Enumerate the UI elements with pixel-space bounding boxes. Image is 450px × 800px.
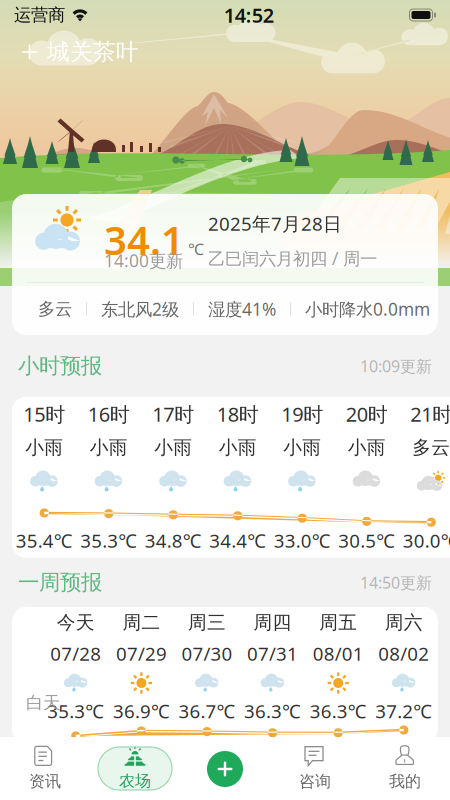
staticText: 小雨: [25, 436, 63, 459]
staticText: 30.5℃: [338, 528, 395, 553]
staticText: 35.4℃: [16, 528, 73, 553]
button[interactable]: Add: [202, 746, 248, 792]
staticText: 07/30: [181, 641, 232, 666]
staticText: 15时: [23, 401, 65, 427]
staticText: 08/01: [313, 641, 364, 666]
staticText: 周六: [385, 611, 423, 634]
staticText: 35.3℃: [80, 528, 137, 553]
staticText: 周三: [188, 611, 226, 634]
button[interactable]: 资讯: [0, 739, 90, 797]
staticText: 21时: [410, 401, 450, 427]
staticText: 30.0℃: [403, 528, 450, 553]
staticText: 07/31: [247, 641, 298, 666]
staticText: 小雨: [219, 436, 257, 459]
staticText: 10:09更新: [360, 355, 432, 377]
button[interactable]: 农场: [90, 739, 180, 797]
staticText: 18时: [217, 401, 259, 427]
staticText: 农场: [119, 771, 151, 791]
button[interactable]: 我的: [360, 739, 450, 797]
staticText: 今天: [57, 611, 95, 634]
staticText: 20时: [346, 401, 388, 427]
staticText: 咨询: [299, 772, 331, 791]
staticText: 周二: [122, 611, 160, 634]
staticText: ℃: [188, 238, 204, 259]
staticText: 36.3℃: [244, 699, 301, 723]
staticText: 36.9℃: [113, 699, 170, 723]
staticText: 运营商: [14, 4, 65, 26]
staticText: 16时: [88, 401, 130, 427]
staticText: 东北风2级: [101, 297, 179, 320]
staticText: 一周预报: [18, 569, 102, 596]
staticText: 37.2℃: [375, 699, 432, 723]
staticText: 城关茶叶: [47, 38, 139, 66]
staticText: 小雨: [90, 436, 128, 459]
staticText: 多云: [38, 298, 72, 320]
staticText: 07/28: [50, 641, 101, 666]
staticText: 36.3℃: [310, 699, 367, 723]
staticText: 19时: [281, 401, 323, 427]
staticText: 36.7℃: [178, 699, 235, 723]
staticText: 乙巳闰六月初四 / 周一: [208, 247, 377, 270]
staticText: 小雨: [283, 436, 321, 459]
staticText: 14:00更新: [104, 249, 183, 272]
staticText: 小时预报: [18, 353, 102, 379]
staticText: 白天: [26, 692, 60, 713]
button[interactable]: 城关茶叶: [0, 30, 450, 74]
staticText: 小雨: [348, 436, 386, 459]
staticText: 33.0℃: [274, 528, 331, 553]
staticText: 34.8℃: [145, 528, 202, 553]
staticText: 17时: [152, 401, 194, 427]
staticText: 14:52: [224, 2, 274, 28]
staticText: 08/02: [378, 641, 429, 666]
staticText: 小雨: [154, 436, 192, 459]
staticText: 周四: [254, 611, 292, 634]
staticText: 34.4℃: [209, 528, 266, 553]
staticText: 资讯: [29, 772, 61, 791]
staticText: 07/29: [116, 641, 167, 666]
staticText: 周五: [319, 611, 357, 634]
staticText: 2025年7月28日: [208, 211, 342, 236]
staticText: 我的: [389, 772, 421, 791]
staticText: 湿度41%: [208, 297, 276, 320]
staticText: 14:50更新: [360, 572, 432, 593]
staticText: 多云: [412, 436, 450, 459]
button[interactable]: 咨询: [270, 739, 360, 797]
staticText: 35.3℃: [47, 699, 104, 723]
staticText: 小时降水0.0mm: [305, 297, 430, 320]
staticText: 34.1: [104, 213, 184, 266]
